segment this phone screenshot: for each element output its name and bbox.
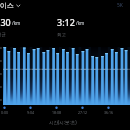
staticText: 3:12 [57, 16, 75, 28]
staticText: 27:12 [78, 110, 87, 115]
staticText: 시간(시:분:초) [49, 119, 77, 125]
staticText: /km [12, 20, 21, 26]
staticText: 18:08 [52, 110, 61, 115]
button[interactable]: 이스 [0, 1, 21, 10]
staticText: 36:16 [104, 110, 113, 115]
button[interactable]: 5K [117, 2, 123, 9]
staticText: 최고 [57, 32, 66, 38]
staticText: /km [76, 20, 85, 26]
staticText: 9:04 [27, 110, 34, 115]
staticText: 0:00 [1, 110, 8, 115]
staticText: :30 [0, 16, 11, 28]
staticText: 5K [117, 2, 123, 9]
staticText: 이스 [0, 1, 14, 10]
staticText: 평균 [0, 32, 6, 38]
